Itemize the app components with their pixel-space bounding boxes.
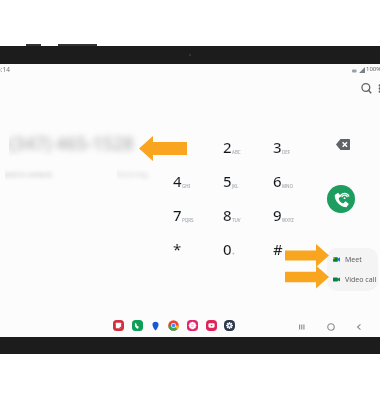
button[interactable]: App 2	[150, 320, 161, 331]
staticText: 9	[273, 205, 282, 225]
button[interactable]: 7	[154, 200, 200, 230]
button[interactable]: 8	[204, 200, 250, 230]
staticText: 4	[173, 171, 182, 191]
staticText: 7	[173, 205, 182, 225]
button[interactable]: App 5	[206, 320, 217, 331]
staticText: Meet	[345, 255, 362, 265]
staticText: Add to contacts	[5, 170, 53, 179]
staticText: #	[273, 239, 283, 259]
button[interactable]: Recents	[296, 321, 308, 333]
staticText: 3	[273, 137, 282, 157]
button[interactable]: Home	[325, 321, 337, 333]
button[interactable]: Meet	[327, 251, 378, 268]
staticText: Video call	[345, 275, 377, 285]
button[interactable]: 5	[204, 166, 250, 196]
button[interactable]: 2	[204, 132, 250, 162]
button[interactable]: App 6	[224, 320, 235, 331]
button[interactable]: 6	[254, 166, 300, 196]
button[interactable]: Call	[327, 185, 355, 213]
staticText: 6:14	[0, 65, 10, 74]
staticText: 8	[223, 205, 232, 225]
button[interactable]: Backspace	[331, 133, 355, 155]
staticText: +	[232, 251, 235, 257]
button[interactable]: #	[254, 234, 300, 264]
button[interactable]: Video call	[327, 271, 378, 288]
button[interactable]: *	[154, 234, 200, 264]
button[interactable]: 0	[204, 234, 250, 264]
staticText: DEF	[282, 149, 291, 155]
staticText: 0	[223, 239, 232, 259]
button[interactable]: App 4	[187, 320, 198, 331]
button[interactable]: App 1	[132, 320, 143, 331]
staticText: 5	[223, 171, 232, 191]
staticText: 6	[273, 171, 282, 191]
button[interactable]: Back	[353, 321, 365, 333]
staticText: MNO	[282, 183, 294, 189]
button[interactable]: More options	[374, 82, 380, 95]
staticText: JKL	[232, 183, 239, 189]
staticText: GHI	[182, 183, 191, 189]
button[interactable]: 4	[154, 166, 200, 196]
button[interactable]: App 0	[113, 320, 124, 331]
staticText: 2	[223, 137, 232, 157]
button[interactable]: Search	[360, 82, 373, 95]
staticText: 1	[173, 137, 182, 157]
button[interactable]: 3	[254, 132, 300, 162]
staticText: *	[173, 239, 182, 259]
staticText: TUV	[232, 217, 241, 223]
staticText: (347) 465-1528	[9, 131, 134, 156]
staticText: 100%	[366, 65, 380, 73]
button[interactable]: App 3	[168, 320, 179, 331]
staticText: ABC	[232, 149, 241, 155]
staticText: PQRS	[182, 217, 194, 223]
staticText: WXYZ	[282, 217, 294, 223]
button[interactable]: 9	[254, 200, 300, 230]
button[interactable]: 1	[154, 132, 200, 162]
